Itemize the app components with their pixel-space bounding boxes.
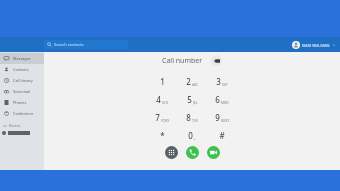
button[interactable]: Video call <box>207 146 220 159</box>
button[interactable]: Contacts <box>0 64 44 75</box>
staticText: Contacts <box>13 67 29 72</box>
button[interactable]: Messages <box>0 53 44 64</box>
staticText: Call number <box>162 56 203 66</box>
button[interactable]: 6 <box>211 94 233 105</box>
button[interactable]: Conference <box>0 108 44 119</box>
button[interactable]: Keypad <box>165 146 178 159</box>
staticText: 9 <box>215 112 220 123</box>
staticText: JKL <box>193 101 198 105</box>
staticText: WXYZ <box>221 119 230 123</box>
staticText: Messages <box>13 56 31 61</box>
staticText: Conference <box>13 111 34 116</box>
button[interactable]: Call <box>186 146 199 159</box>
button[interactable]: # <box>211 130 233 141</box>
button[interactable]: 3 <box>211 76 233 87</box>
button[interactable]: 1 <box>151 76 173 87</box>
staticText: GHI <box>162 101 168 105</box>
button[interactable]: 9 <box>211 112 233 123</box>
staticText: PQRS <box>161 119 170 123</box>
button[interactable]: 4 <box>151 94 173 105</box>
staticText: Search contacts <box>54 42 84 47</box>
staticText: Voicemail <box>13 89 31 94</box>
staticText: 4 <box>156 94 161 105</box>
staticText: MNO <box>221 101 229 105</box>
staticText: Call history <box>13 78 33 83</box>
staticText: 2 <box>186 76 191 87</box>
button[interactable]: 0 <box>181 130 203 141</box>
button[interactable] <box>2 129 44 136</box>
button[interactable]: Search contacts <box>44 40 128 49</box>
staticText: # <box>219 130 225 141</box>
staticText: 0 <box>188 130 193 141</box>
button[interactable]: Voicemail <box>0 86 44 97</box>
staticText: 8 <box>186 112 191 123</box>
staticText: Recent <box>9 123 21 128</box>
staticText: + <box>194 137 196 141</box>
staticText: 5 <box>187 94 192 105</box>
staticText: 7 <box>155 112 160 123</box>
staticText: TUV <box>192 119 199 123</box>
staticText: 3 <box>216 76 221 87</box>
button[interactable]: * <box>151 130 173 141</box>
button[interactable]: 5 <box>181 94 203 105</box>
button[interactable]: Account <box>292 41 336 49</box>
staticText: 1 <box>160 76 165 87</box>
staticText: Phones <box>13 100 27 105</box>
button[interactable]: Call history <box>0 75 44 86</box>
staticText: DEF <box>222 83 228 87</box>
button[interactable]: 7 <box>151 112 173 123</box>
staticText: * <box>160 130 165 141</box>
button[interactable]: Phones <box>0 97 44 108</box>
button[interactable]: Backspace <box>211 55 222 66</box>
button[interactable]: 8 <box>181 112 203 123</box>
staticText: 6 <box>215 94 220 105</box>
staticText: (555) 555-5555 <box>302 43 330 48</box>
button[interactable]: 2 <box>181 76 203 87</box>
staticText: ABC <box>192 83 199 87</box>
